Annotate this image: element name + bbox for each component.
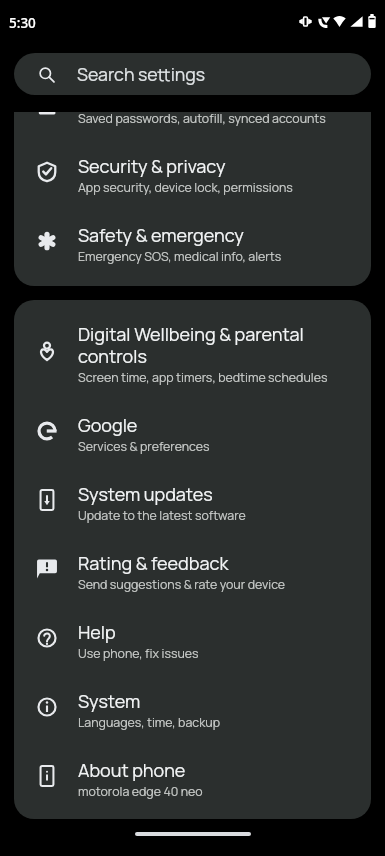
staticText: motorola edge 40 neo [78,783,203,800]
staticText: Languages, time, backup [78,714,220,731]
staticText: 5:30 [9,14,36,32]
button[interactable]: Digital Wellbeing & parental controls [14,308,371,399]
button[interactable]: Google [14,399,371,468]
staticText: Update to the latest software [78,507,246,524]
button[interactable]: Safety & emergency [14,209,371,278]
staticText: Screen time, app timers, bedtime schedul… [78,369,328,386]
staticText: System [78,689,141,714]
button[interactable]: Help [14,606,371,675]
staticText: Safety & emergency [78,223,244,248]
staticText: Rating & feedback [78,551,229,576]
staticText: App security, device lock, permissions [78,179,293,196]
staticText: Help [78,620,116,645]
staticText: Google [78,413,138,438]
staticText: About phone [78,758,186,783]
button[interactable]: Search settings [14,53,371,95]
button[interactable]: System [14,675,371,744]
staticText: Security & privacy [78,154,226,179]
button[interactable]: Security & privacy [14,140,371,209]
button[interactable]: Rating & feedback [14,537,371,606]
button[interactable]: About phone [14,744,371,813]
staticText: Services & preferences [78,438,210,455]
staticText: System updates [78,482,213,507]
staticText: Saved passwords, autofill, synced accoun… [78,112,326,127]
staticText: Send suggestions & rate your device [78,576,286,593]
button[interactable]: Passwords & accounts [14,112,371,140]
staticText: Search settings [77,62,206,86]
staticText: Emergency SOS, medical info, alerts [78,248,282,265]
button[interactable]: System updates [14,468,371,537]
staticText: Digital Wellbeing & parental controls [78,322,355,369]
staticText: Use phone, fix issues [78,645,199,662]
